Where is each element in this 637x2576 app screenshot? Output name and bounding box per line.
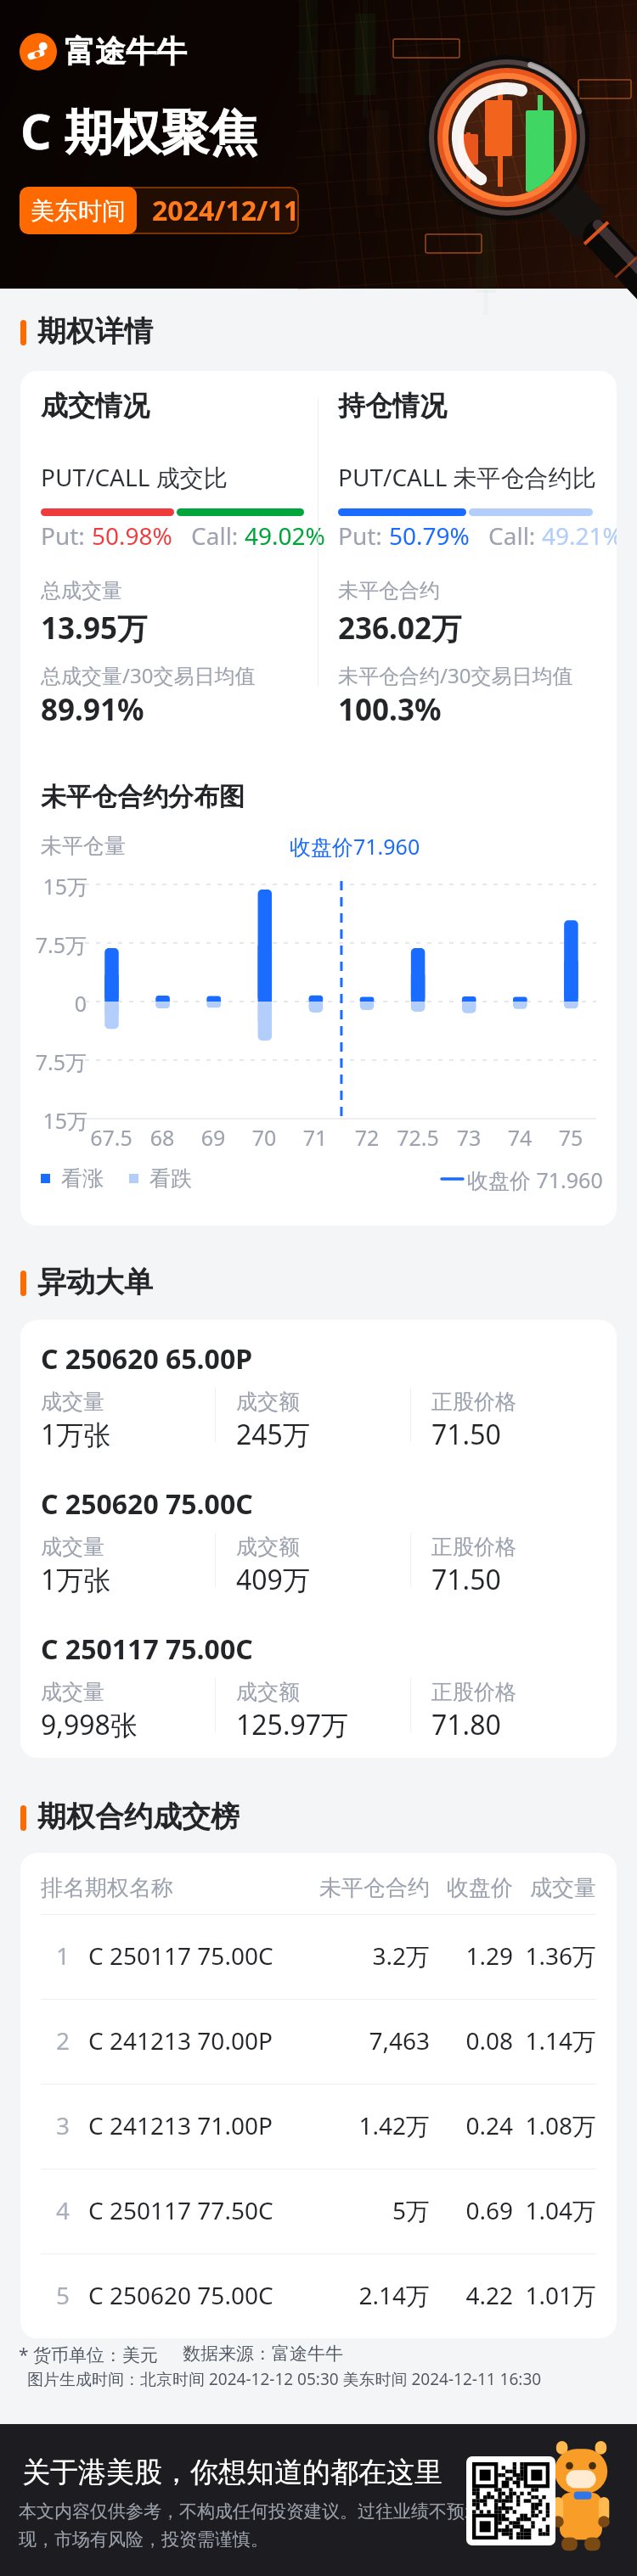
staticText: Put: [41, 519, 92, 552]
staticText: 看涨 [61, 1165, 104, 1192]
staticText: 0 [32, 989, 87, 1018]
staticText: 2 [44, 2024, 82, 2057]
staticText: 收盘价71.960 [290, 832, 420, 861]
button[interactable]: 5 [20, 2253, 617, 2338]
staticText: 100.3% [338, 689, 442, 730]
staticText: 正股价格 [431, 1389, 516, 1415]
staticText: 美东时间 [31, 196, 126, 226]
staticText: 236.02万 [338, 608, 461, 648]
staticText: 成交量 [41, 1389, 104, 1415]
staticText: 1.01万 [511, 2279, 596, 2311]
staticText: 正股价格 [431, 1679, 516, 1705]
staticText: 72.5 [384, 1123, 452, 1152]
staticText: 5万 [260, 2194, 430, 2226]
staticText: 图片生成时间：北京时间 2024-12-12 05:30 美东时间 2024-1… [27, 2368, 542, 2390]
staticText: 9,998张 [41, 1706, 138, 1743]
staticText: 未平仓量 [41, 833, 126, 859]
staticText: 现，市场有风险，投资需谨慎。 [19, 2528, 268, 2551]
staticText: 2.14万 [260, 2279, 430, 2311]
staticText: 7,463 [260, 2024, 430, 2057]
staticText: 7.5万 [32, 930, 87, 959]
staticText: 15万 [42, 872, 87, 901]
staticText: 89.91% [41, 689, 144, 730]
button[interactable]: C 250117 75.00C [20, 1610, 617, 1756]
staticText: 0.08 [428, 2024, 513, 2057]
staticText: * 货币单位：美元 [19, 2343, 159, 2367]
staticText: 未平仓合约/30交易日均值 [338, 661, 573, 689]
staticText: 1.08万 [511, 2109, 596, 2141]
staticText: C 250620 75.00C [41, 1485, 253, 1523]
staticText: 关于港美股，你想知道的都在这里 [22, 2455, 443, 2490]
staticText: 0.24 [428, 2109, 513, 2141]
staticText: 数据来源：富途牛牛 [183, 2343, 343, 2365]
staticText: 68 [128, 1123, 196, 1152]
staticText: 0.69 [428, 2194, 513, 2226]
staticText: PUT/CALL 未平仓合约比 [338, 461, 596, 493]
staticText: 成交额 [236, 1389, 300, 1415]
staticText: Call: [488, 519, 542, 552]
staticText: C 250117 75.00C [88, 1939, 273, 1972]
staticText: 71.50 [431, 1561, 501, 1598]
staticText: 总成交量/30交易日均值 [41, 661, 256, 689]
staticText: 72 [333, 1123, 401, 1152]
staticText: C 250117 77.50C [88, 2194, 273, 2226]
staticText: 成交量 [511, 1874, 596, 1902]
button[interactable]: 3 [20, 2084, 617, 2169]
staticText: 期权详情 [37, 313, 153, 350]
staticText: 67.5 [77, 1123, 145, 1152]
staticText: 异动大单 [37, 1264, 153, 1300]
staticText: 5 [44, 2279, 82, 2311]
staticText: 70 [230, 1123, 298, 1152]
button[interactable]: 1 [20, 1914, 617, 1999]
staticText: 125.97万 [236, 1706, 349, 1743]
staticText: 看跌 [149, 1165, 192, 1192]
button[interactable]: C 250620 65.00P [20, 1320, 617, 1466]
button[interactable]: C 250620 75.00C [20, 1465, 617, 1611]
staticText: 4 [44, 2194, 82, 2226]
staticText: 收盘价 [428, 1874, 513, 1902]
staticText: 245万 [236, 1416, 310, 1453]
button[interactable]: 4 [20, 2169, 617, 2253]
staticText: 正股价格 [431, 1534, 516, 1560]
staticText: PUT/CALL 成交比 [41, 461, 228, 493]
staticText: 未平仓合约 [260, 1874, 430, 1902]
staticText: 71 [281, 1123, 349, 1152]
staticText: 本文内容仅供参考，不构成任何投资建议。过往业绩不预示未来表 [19, 2500, 536, 2523]
staticText: 1万张 [41, 1416, 111, 1453]
staticText: 50.79% [389, 519, 470, 552]
button[interactable]: 2 [20, 1999, 617, 2084]
staticText: 1万张 [41, 1561, 111, 1598]
staticText: 69 [179, 1123, 247, 1152]
staticText: Put: [338, 519, 389, 552]
staticText: 409万 [236, 1561, 310, 1598]
staticText: C 250620 75.00C [88, 2279, 273, 2311]
staticText: 1.04万 [511, 2194, 596, 2226]
staticText: 成交量 [41, 1679, 104, 1705]
staticText: C 250117 75.00C [41, 1630, 253, 1668]
staticText: 1.29 [428, 1939, 513, 1972]
staticText: 13.95万 [41, 608, 147, 648]
staticText: 成交量 [41, 1534, 104, 1560]
staticText: Call: [191, 519, 245, 552]
staticText: 富途牛牛 [65, 32, 187, 70]
staticText: 71.80 [431, 1706, 501, 1743]
staticText: 74 [486, 1123, 554, 1152]
staticText: 成交额 [236, 1534, 300, 1560]
staticText: 4.22 [428, 2279, 513, 2311]
staticText: 收盘价 71.960 [467, 1165, 603, 1194]
staticText: 49.02% [245, 519, 325, 552]
staticText: 50.98% [92, 519, 172, 552]
staticText: 3 [44, 2109, 82, 2141]
staticText: 排名 [41, 1874, 85, 1902]
staticText: 1.36万 [511, 1939, 596, 1972]
staticText: 71.50 [431, 1416, 501, 1453]
staticText: 73 [435, 1123, 503, 1152]
staticText: 期权合约成交榜 [37, 1799, 240, 1835]
staticText: 成交额 [236, 1679, 300, 1705]
staticText: 1 [44, 1939, 82, 1972]
staticText: C 241213 71.00P [88, 2109, 273, 2141]
staticText: C 250620 65.00P [41, 1340, 253, 1378]
staticText: 49.21% [542, 519, 617, 552]
staticText: 未平仓合约 [338, 578, 440, 603]
staticText: C 241213 70.00P [88, 2024, 273, 2057]
